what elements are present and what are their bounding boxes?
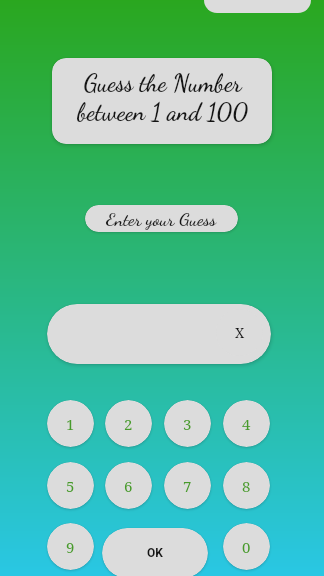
button[interactable]: 1 bbox=[47, 400, 94, 447]
button[interactable]: Enter your Guess bbox=[85, 205, 238, 232]
button[interactable]: 0 bbox=[223, 523, 270, 570]
staticText: Guess the Number between 1 and 100 bbox=[77, 69, 248, 127]
button[interactable]: Menu bbox=[204, 0, 311, 13]
button[interactable]: 6 bbox=[105, 462, 152, 509]
staticText: 9 bbox=[66, 537, 75, 557]
button[interactable]: 8 bbox=[223, 462, 270, 509]
staticText: 0 bbox=[242, 537, 251, 557]
button[interactable]: 5 bbox=[47, 462, 94, 509]
button[interactable]: Guess input bbox=[47, 304, 271, 364]
staticText: 3 bbox=[183, 414, 192, 434]
staticText: 7 bbox=[183, 476, 192, 496]
button[interactable]: 9 bbox=[47, 523, 94, 570]
button[interactable]: 4 bbox=[223, 400, 270, 447]
button[interactable]: Clear bbox=[216, 309, 263, 356]
staticText: 6 bbox=[124, 476, 133, 496]
staticText: 4 bbox=[242, 414, 251, 434]
staticText: 1 bbox=[66, 414, 75, 434]
button[interactable]: OK bbox=[102, 528, 208, 576]
staticText: 5 bbox=[66, 476, 75, 496]
staticText: X bbox=[235, 323, 245, 342]
staticText: Enter your Guess bbox=[106, 208, 217, 230]
button[interactable]: 7 bbox=[164, 462, 211, 509]
staticText: 2 bbox=[124, 414, 133, 434]
staticText: 8 bbox=[242, 476, 251, 496]
staticText: OK bbox=[147, 546, 163, 560]
button[interactable]: 2 bbox=[105, 400, 152, 447]
button[interactable]: 3 bbox=[164, 400, 211, 447]
